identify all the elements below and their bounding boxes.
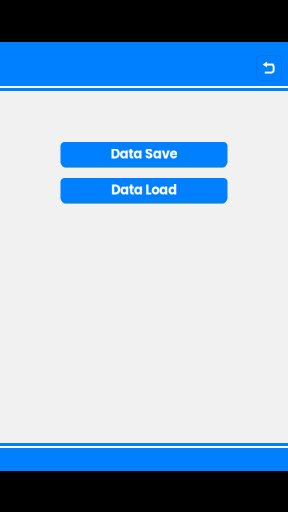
button[interactable]: Back: [256, 55, 282, 81]
button[interactable]: Data Save: [60, 141, 227, 167]
button[interactable]: Data Load: [60, 177, 227, 203]
staticText: Data Load: [111, 181, 177, 199]
staticText: Data Save: [111, 145, 177, 163]
